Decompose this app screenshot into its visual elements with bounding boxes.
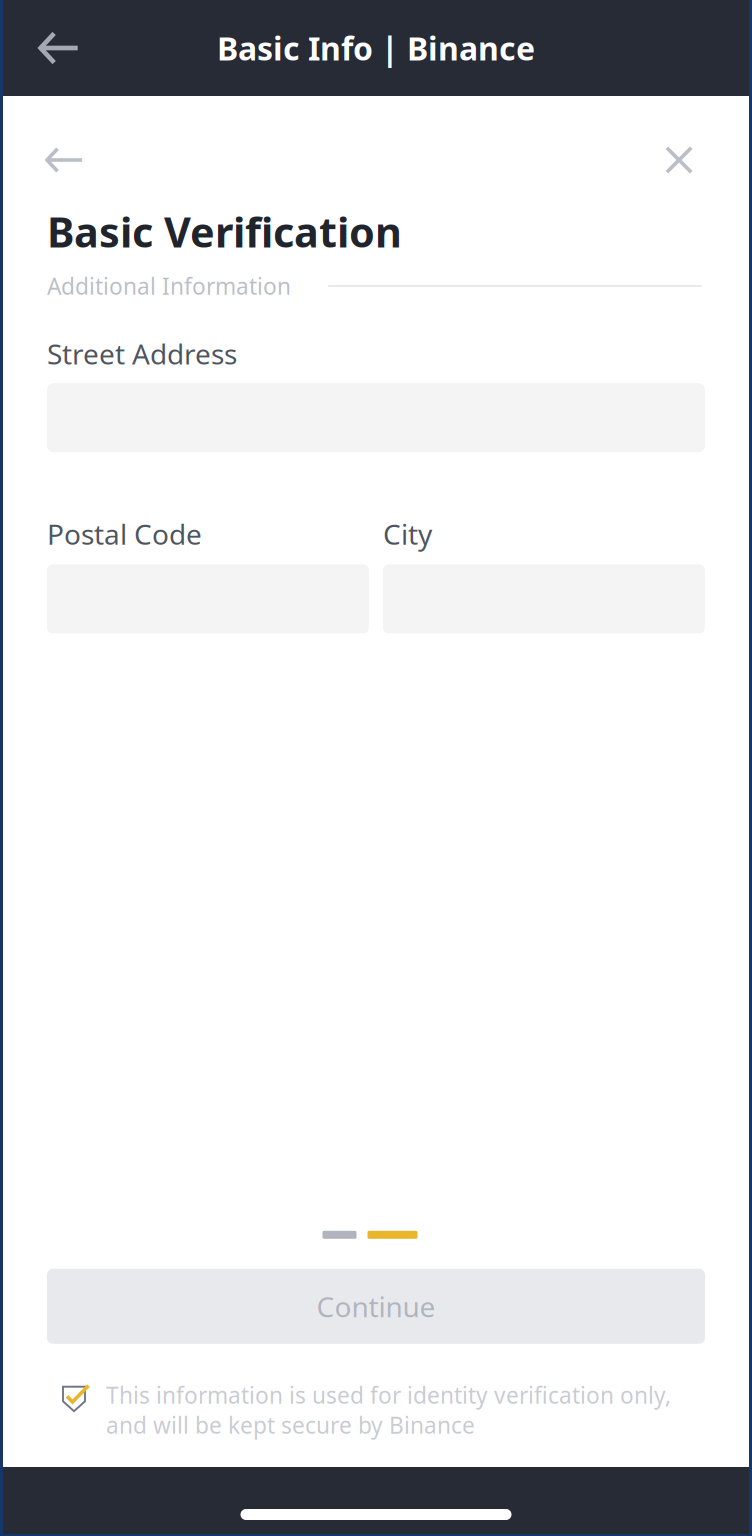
staticText: Continue [316,1288,435,1325]
staticText: Basic Verification [47,204,402,259]
button[interactable]: Continue [47,1269,705,1344]
button[interactable]: Back [45,138,89,182]
staticText: Postal Code [47,515,202,552]
staticText: This information is used for identity ve… [106,1380,671,1440]
staticText: Additional Information [47,271,291,301]
staticText: Basic Info | Binance [217,27,535,69]
staticText: City [383,515,432,552]
button[interactable]: Close [649,138,693,182]
staticText: Street Address [47,335,237,372]
button[interactable]: Back [3,0,80,96]
